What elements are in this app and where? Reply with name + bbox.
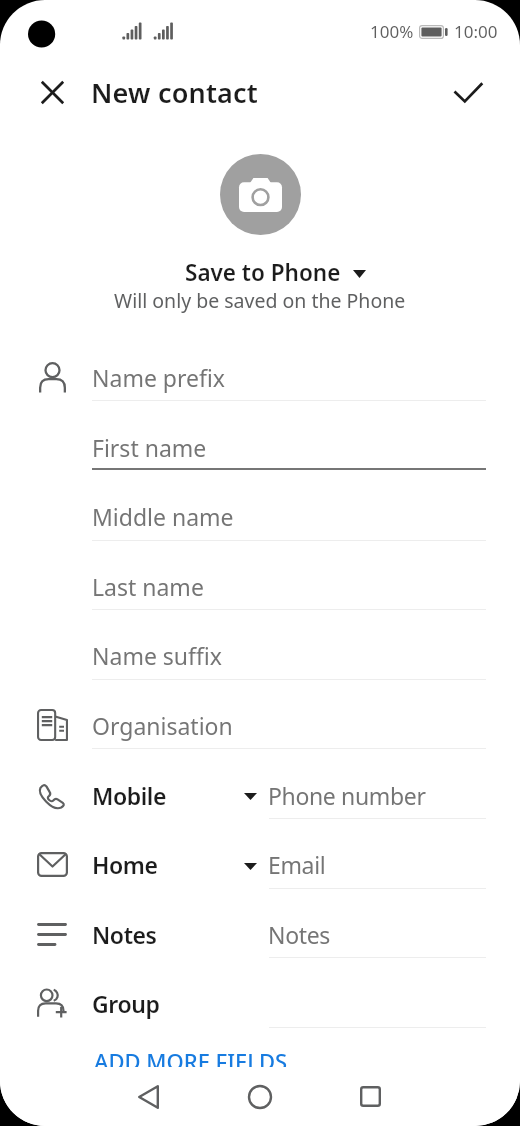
- button[interactable]: [0, 958, 520, 1027]
- staticText: Organisation: [92, 710, 233, 741]
- button[interactable]: [0, 819, 520, 888]
- button[interactable]: [0, 471, 520, 540]
- staticText: First name: [92, 432, 207, 463]
- staticText: Home: [92, 849, 158, 880]
- button[interactable]: [0, 888, 520, 957]
- staticText: Group: [92, 988, 160, 1019]
- button[interactable]: Home: [229, 1067, 291, 1126]
- staticText: Last name: [92, 571, 204, 602]
- staticText: New contact: [91, 74, 259, 111]
- staticText: Will only be saved on the Phone: [114, 287, 406, 314]
- staticText: Name suffix: [92, 640, 222, 671]
- button[interactable]: [0, 749, 520, 818]
- button[interactable]: Add photo: [220, 154, 301, 235]
- staticText: Notes: [92, 919, 157, 950]
- button[interactable]: Recents: [339, 1067, 401, 1126]
- staticText: Email: [268, 849, 326, 880]
- staticText: Middle name: [92, 501, 234, 532]
- button[interactable]: [0, 610, 520, 679]
- staticText: Mobile: [92, 780, 167, 811]
- staticText: 100%: [370, 20, 414, 43]
- button[interactable]: [0, 331, 520, 400]
- staticText: ADD MORE FIELDS: [94, 1046, 288, 1076]
- button[interactable]: [0, 679, 520, 748]
- staticText: 10:00: [454, 20, 498, 43]
- staticText: Save to Phone: [185, 257, 341, 288]
- button[interactable]: Save: [446, 70, 490, 114]
- button[interactable]: Save to Phone: [185, 257, 366, 288]
- staticText: Phone number: [268, 780, 426, 811]
- staticText: Name prefix: [92, 362, 226, 393]
- button[interactable]: Back: [117, 1067, 179, 1126]
- button[interactable]: Close: [30, 70, 74, 114]
- button[interactable]: ADD MORE FIELDS: [94, 1046, 288, 1076]
- button[interactable]: [0, 540, 520, 609]
- button[interactable]: [0, 401, 520, 470]
- staticText: Notes: [268, 919, 330, 950]
